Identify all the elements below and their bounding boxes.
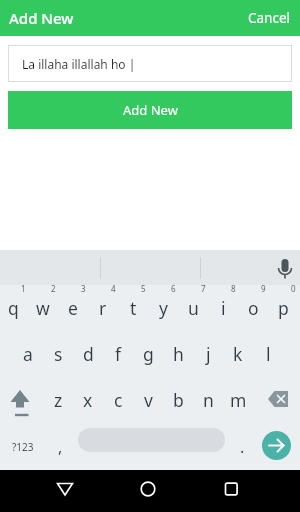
staticText: t xyxy=(130,296,137,320)
button[interactable]: 6 xyxy=(148,285,178,331)
staticText: Cancel xyxy=(248,9,291,27)
button[interactable]: 9 xyxy=(238,285,268,331)
staticText: y xyxy=(159,296,168,320)
button[interactable] xyxy=(262,431,291,460)
staticText: q xyxy=(8,296,19,320)
staticText: 8 xyxy=(231,283,236,294)
staticText: m xyxy=(230,388,247,412)
staticText: 4 xyxy=(111,283,116,294)
staticText: n xyxy=(203,388,214,412)
button[interactable]: b xyxy=(163,377,193,423)
button[interactable]: v xyxy=(133,377,163,423)
staticText: h xyxy=(173,342,184,366)
staticText: o xyxy=(248,296,259,320)
button[interactable]: f xyxy=(103,331,133,377)
button[interactable]: l xyxy=(253,331,283,377)
staticText: p xyxy=(278,296,289,320)
staticText: 6 xyxy=(171,283,176,294)
staticText: z xyxy=(54,388,63,412)
staticText: b xyxy=(173,388,184,412)
staticText: 7 xyxy=(201,283,206,294)
button[interactable]: z xyxy=(43,377,73,423)
staticText: a xyxy=(23,342,33,366)
button[interactable]: 8 xyxy=(208,285,238,331)
button[interactable]: 2 xyxy=(28,285,58,331)
button[interactable]: k xyxy=(223,331,253,377)
staticText: Add New xyxy=(123,101,178,119)
staticText: 2 xyxy=(51,283,56,294)
staticText: 9 xyxy=(261,283,266,294)
button[interactable]: 1 xyxy=(0,285,28,331)
staticText: 3 xyxy=(81,283,86,294)
button[interactable]: . xyxy=(227,423,257,470)
button[interactable]: n xyxy=(193,377,223,423)
button[interactable] xyxy=(0,470,100,512)
staticText: r xyxy=(99,296,107,320)
staticText: v xyxy=(144,388,153,412)
staticText: , xyxy=(58,436,63,458)
button[interactable] xyxy=(256,377,300,423)
button[interactable]: a xyxy=(13,331,43,377)
button[interactable] xyxy=(100,470,200,512)
staticText: . xyxy=(240,436,245,458)
button[interactable]: 3 xyxy=(58,285,88,331)
button[interactable] xyxy=(200,470,300,512)
staticText: La illaha illallah ho | xyxy=(22,56,136,72)
button[interactable]: m xyxy=(223,377,253,423)
staticText: ?123 xyxy=(12,440,34,454)
button[interactable]: c xyxy=(103,377,133,423)
staticText: Add New xyxy=(9,8,74,28)
button[interactable]: g xyxy=(133,331,163,377)
button[interactable]: 0 xyxy=(268,285,298,331)
button[interactable]: ?123 xyxy=(0,423,45,470)
button[interactable]: 5 xyxy=(118,285,148,331)
button[interactable]: d xyxy=(73,331,103,377)
staticText: f xyxy=(115,342,122,366)
staticText: w xyxy=(36,296,50,320)
staticText: s xyxy=(54,342,63,366)
staticText: x xyxy=(83,388,93,412)
button[interactable]: s xyxy=(43,331,73,377)
button[interactable]: j xyxy=(193,331,223,377)
button[interactable]: Add New xyxy=(8,91,292,129)
staticText: i xyxy=(221,296,226,320)
staticText: j xyxy=(206,342,211,366)
button[interactable]: 7 xyxy=(178,285,208,331)
staticText: u xyxy=(188,296,199,320)
button[interactable]: La illaha illallah ho | xyxy=(8,45,292,82)
staticText: k xyxy=(233,342,243,366)
staticText: l xyxy=(266,342,271,366)
button[interactable]: x xyxy=(73,377,103,423)
button[interactable]: Cancel xyxy=(239,0,300,36)
button[interactable] xyxy=(0,377,44,423)
button[interactable]: 4 xyxy=(88,285,118,331)
staticText: 1 xyxy=(21,283,26,294)
staticText: e xyxy=(68,296,78,320)
button[interactable]: , xyxy=(45,423,76,470)
button[interactable] xyxy=(78,428,225,452)
button[interactable]: h xyxy=(163,331,193,377)
staticText: g xyxy=(143,342,154,366)
staticText: 5 xyxy=(141,283,146,294)
staticText: 0 xyxy=(291,283,296,294)
staticText: c xyxy=(114,388,123,412)
staticText: d xyxy=(83,342,94,366)
